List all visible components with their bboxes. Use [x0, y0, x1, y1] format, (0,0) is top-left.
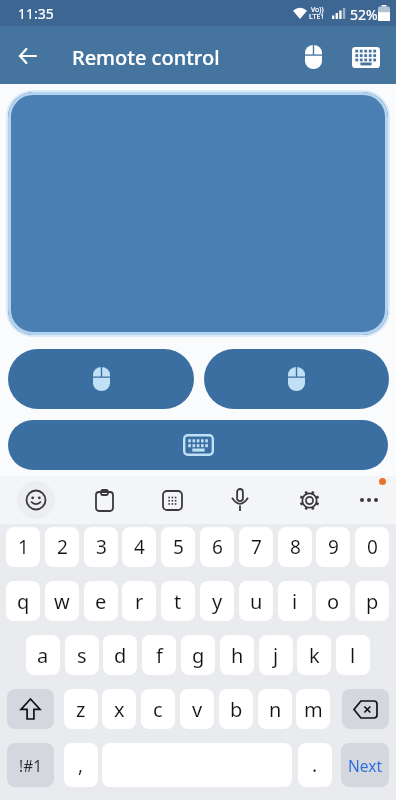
button[interactable]: m: [296, 689, 330, 729]
button[interactable]: [290, 481, 328, 519]
staticText: x: [114, 696, 125, 723]
button[interactable]: n: [258, 689, 292, 729]
button[interactable]: l: [336, 635, 370, 675]
button[interactable]: c: [141, 689, 175, 729]
button[interactable]: 7: [239, 527, 273, 567]
button[interactable]: [204, 349, 389, 409]
staticText: 11:35: [18, 4, 54, 23]
staticText: p: [366, 588, 379, 615]
button[interactable]: b: [219, 689, 253, 729]
staticText: 9: [328, 534, 339, 560]
button[interactable]: h: [220, 635, 254, 675]
staticText: 5: [173, 534, 184, 560]
button[interactable]: [8, 36, 48, 76]
staticText: b: [230, 696, 243, 723]
staticText: g: [192, 642, 205, 669]
staticText: 52%: [350, 5, 378, 24]
button[interactable]: a: [26, 635, 60, 675]
button[interactable]: [291, 35, 335, 79]
staticText: z: [76, 696, 86, 723]
staticText: 0: [367, 534, 378, 560]
staticText: c: [153, 696, 163, 723]
button[interactable]: [344, 35, 388, 79]
button[interactable]: 8: [278, 527, 312, 567]
button[interactable]: f: [142, 635, 176, 675]
button[interactable]: i: [278, 581, 312, 621]
button[interactable]: 5: [161, 527, 195, 567]
button[interactable]: j: [259, 635, 293, 675]
button[interactable]: 9: [316, 527, 350, 567]
button[interactable]: d: [103, 635, 137, 675]
button[interactable]: z: [64, 689, 98, 729]
button[interactable]: ,: [64, 743, 98, 787]
button[interactable]: [8, 92, 388, 335]
button[interactable]: 6: [200, 527, 234, 567]
staticText: n: [269, 696, 282, 723]
button[interactable]: [7, 689, 54, 729]
button[interactable]: [342, 689, 389, 729]
staticText: 3: [96, 534, 107, 560]
staticText: s: [77, 642, 87, 669]
staticText: a: [37, 642, 49, 669]
staticText: j: [273, 642, 279, 669]
button[interactable]: 0: [355, 527, 389, 567]
staticText: r: [135, 588, 144, 615]
staticText: LTE1: [309, 12, 325, 22]
button[interactable]: o: [316, 581, 350, 621]
button[interactable]: x: [102, 689, 136, 729]
button[interactable]: y: [200, 581, 234, 621]
button[interactable]: [350, 481, 388, 519]
button[interactable]: r: [122, 581, 156, 621]
button[interactable]: u: [239, 581, 273, 621]
staticText: 7: [251, 534, 262, 560]
staticText: o: [327, 588, 340, 615]
button[interactable]: p: [355, 581, 389, 621]
staticText: 8: [290, 534, 301, 560]
staticText: Next: [348, 755, 383, 776]
button[interactable]: w: [45, 581, 79, 621]
button[interactable]: q: [6, 581, 40, 621]
staticText: v: [192, 696, 203, 723]
staticText: q: [17, 588, 30, 615]
button[interactable]: 3: [84, 527, 118, 567]
button[interactable]: Next: [341, 743, 389, 787]
button[interactable]: [221, 481, 259, 519]
button[interactable]: 1: [6, 527, 40, 567]
staticText: l: [350, 642, 356, 669]
staticText: 6: [212, 534, 223, 560]
staticText: f: [156, 642, 163, 669]
button[interactable]: !#1: [7, 743, 54, 787]
staticText: d: [114, 642, 127, 669]
staticText: 4: [134, 534, 145, 560]
staticText: u: [250, 588, 263, 615]
button[interactable]: 4: [122, 527, 156, 567]
button[interactable]: [153, 481, 191, 519]
staticText: k: [309, 642, 320, 669]
staticText: t: [174, 588, 182, 615]
staticText: e: [95, 588, 107, 615]
staticText: !#1: [19, 755, 43, 776]
staticText: y: [212, 588, 223, 615]
button[interactable]: k: [297, 635, 331, 675]
button[interactable]: [8, 349, 194, 409]
button[interactable]: .: [298, 743, 332, 787]
button[interactable]: [85, 481, 123, 519]
button[interactable]: g: [181, 635, 215, 675]
button[interactable]: [8, 420, 388, 470]
button[interactable]: v: [180, 689, 214, 729]
staticText: 2: [57, 534, 68, 560]
staticText: ,: [78, 752, 84, 778]
button[interactable]: t: [161, 581, 195, 621]
staticText: h: [231, 642, 244, 669]
staticText: Vo)): [311, 5, 324, 15]
staticText: w: [54, 588, 70, 615]
button[interactable]: 2: [45, 527, 79, 567]
staticText: .: [312, 752, 318, 778]
staticText: m: [304, 696, 323, 723]
staticText: 1: [18, 534, 29, 560]
staticText: i: [292, 588, 298, 615]
button[interactable]: s: [65, 635, 99, 675]
button[interactable]: e: [84, 581, 118, 621]
button[interactable]: [17, 481, 55, 519]
